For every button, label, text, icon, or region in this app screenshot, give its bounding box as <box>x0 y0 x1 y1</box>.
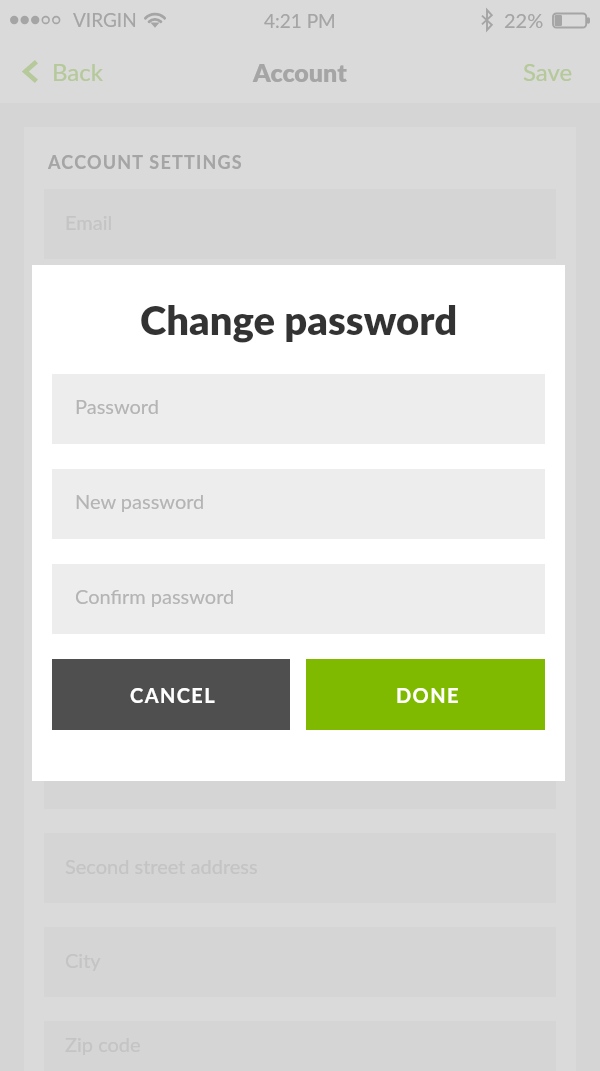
staticText: 22% <box>504 8 544 32</box>
other: Bluetooth <box>481 10 493 30</box>
staticText: VIRGIN <box>73 8 137 31</box>
staticText: Second street address <box>65 854 258 878</box>
staticText: Confirm password <box>75 584 235 608</box>
button[interactable]: CANCEL <box>52 659 290 730</box>
button[interactable]: Last name <box>44 551 556 621</box>
button[interactable]: Save <box>495 47 600 96</box>
staticText: Change password <box>140 296 458 344</box>
staticText: Save <box>523 57 573 86</box>
staticText: ACCOUNT SETTINGS <box>48 151 243 173</box>
staticText: First name <box>65 478 158 502</box>
staticText: New password <box>75 489 205 513</box>
staticText: Phone number <box>65 666 195 690</box>
staticText: Street address <box>65 760 190 784</box>
button[interactable]: Password <box>44 283 556 353</box>
other: Battery 22 percent <box>552 12 592 29</box>
button[interactable]: Confirm password <box>52 564 545 634</box>
staticText: CANCEL <box>130 683 217 707</box>
button[interactable]: New password <box>52 469 545 539</box>
button[interactable]: DONE <box>306 659 545 730</box>
button[interactable]: Password <box>52 374 545 444</box>
other: Back <box>23 61 37 82</box>
staticText: Password <box>75 394 159 418</box>
staticText: Last name <box>65 572 155 596</box>
button[interactable]: First name <box>44 457 556 527</box>
staticText: Account <box>253 57 347 87</box>
button[interactable]: Street address <box>44 739 556 809</box>
staticText: 4:21 PM <box>264 9 336 32</box>
staticText: Email <box>65 210 113 234</box>
staticText: Password <box>65 304 149 328</box>
staticText: Back <box>52 57 103 86</box>
button[interactable]: Back <box>0 49 117 94</box>
staticText: DONE <box>396 683 460 707</box>
staticText: Zip code <box>65 1032 141 1056</box>
other: Wi-Fi <box>145 12 165 28</box>
staticText: City <box>65 948 101 972</box>
button[interactable]: Phone number <box>44 645 556 715</box>
